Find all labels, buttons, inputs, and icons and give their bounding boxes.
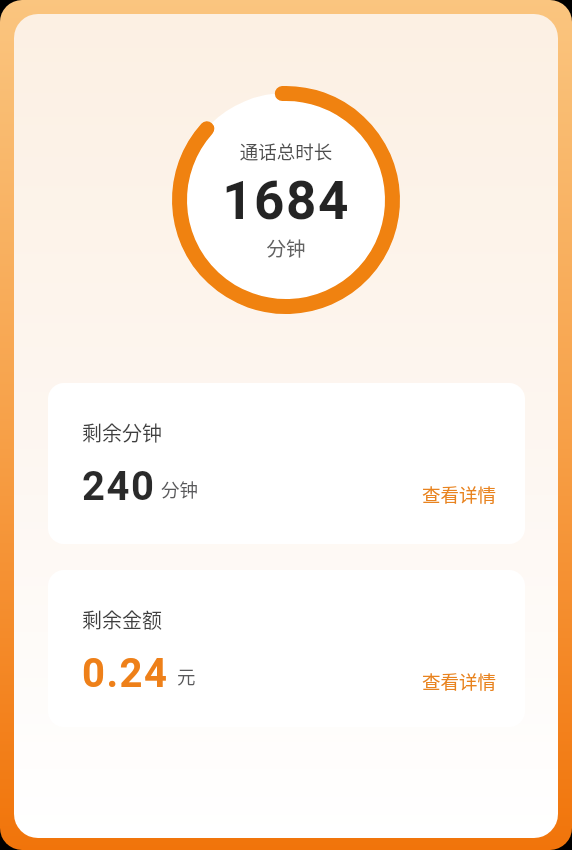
staticText: 剩余金额 <box>82 605 162 634</box>
staticText: 分钟 <box>166 233 406 261</box>
staticText: 查看详情 <box>422 481 497 508</box>
staticText: 通话总时长 <box>166 138 406 165</box>
button[interactable]: 剩余分钟 <box>48 383 525 544</box>
staticText: 分钟 <box>161 476 199 503</box>
staticText: 0.24 <box>82 650 169 697</box>
button[interactable]: 查看详情 <box>422 668 497 695</box>
button[interactable]: 剩余金额 <box>48 570 525 727</box>
staticText: 240 <box>82 463 156 510</box>
button[interactable]: 查看详情 <box>422 481 497 508</box>
staticText: 剩余分钟 <box>82 418 162 447</box>
staticText: 元 <box>177 663 196 690</box>
staticText: 1684 <box>166 170 406 232</box>
staticText: 查看详情 <box>422 668 497 695</box>
